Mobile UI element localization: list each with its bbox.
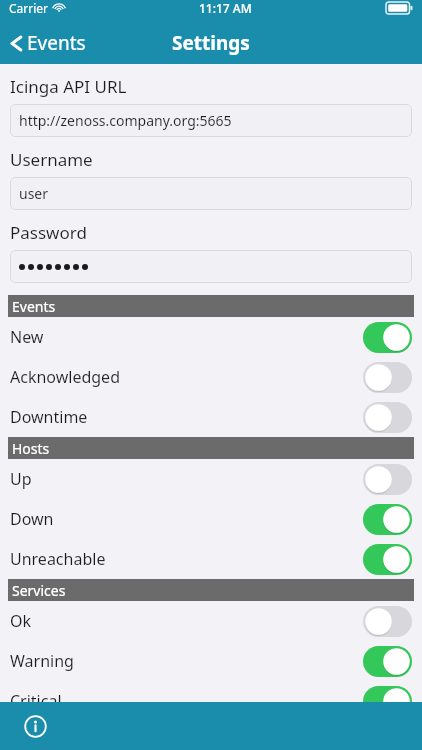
button[interactable]: Warning	[0, 641, 422, 681]
button[interactable]	[10, 250, 412, 283]
button[interactable]: Ok	[0, 601, 422, 641]
staticText: Warning	[10, 650, 74, 672]
button[interactable]: Unreachable	[0, 539, 422, 579]
staticText: Up	[10, 468, 32, 490]
button[interactable]: Acknowledged	[0, 357, 422, 397]
staticText: Down	[10, 508, 54, 530]
staticText: Hosts	[12, 439, 50, 458]
staticText: New	[10, 326, 44, 348]
button[interactable]: Down	[0, 499, 422, 539]
button[interactable]: On	[363, 646, 412, 677]
button[interactable]: Up	[0, 459, 422, 499]
staticText: Icinga API URL	[10, 75, 127, 98]
staticText: Events	[12, 297, 56, 316]
button[interactable]: Off	[363, 464, 412, 495]
staticText: Unreachable	[10, 548, 106, 570]
button[interactable]: On	[363, 504, 412, 535]
button[interactable]: New	[0, 317, 422, 357]
button[interactable]: On	[363, 322, 412, 353]
staticText: Settings	[172, 30, 250, 56]
button[interactable]: Off	[363, 606, 412, 637]
staticText: Critical	[10, 690, 62, 712]
button[interactable]: Downtime	[0, 397, 422, 437]
button[interactable]: On	[363, 544, 412, 575]
staticText: Downtime	[10, 406, 88, 428]
button[interactable]: Events	[0, 24, 96, 62]
staticText: http://zenoss.company.org:5665	[19, 111, 232, 130]
staticText: 11:17 AM	[199, 0, 252, 16]
button[interactable]: On	[363, 686, 412, 717]
staticText: user	[19, 184, 49, 203]
staticText: Ok	[10, 610, 32, 632]
staticText: Username	[10, 148, 93, 171]
button[interactable]: Info	[20, 711, 50, 741]
staticText: Carrier	[9, 0, 49, 16]
staticText: Events	[27, 30, 86, 56]
button[interactable]: Off	[363, 362, 412, 393]
staticText: Services	[12, 581, 66, 600]
staticText: Password	[10, 221, 87, 244]
staticText: Acknowledged	[10, 366, 120, 388]
button[interactable]: user	[10, 177, 412, 210]
button[interactable]: Off	[363, 402, 412, 433]
button[interactable]: Critical	[0, 681, 422, 721]
button[interactable]: http://zenoss.company.org:5665	[10, 104, 412, 137]
